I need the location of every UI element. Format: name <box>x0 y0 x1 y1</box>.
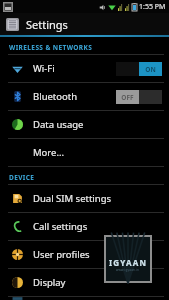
button[interactable]: Bluetooth off <box>116 90 162 104</box>
staticText: WIRELESS & NETWORKS <box>9 43 93 52</box>
button[interactable]: Display <box>0 269 169 296</box>
staticText: Bluetooth <box>33 90 78 103</box>
staticText: Call settings <box>33 220 88 233</box>
button[interactable]: Wi-Fi on <box>116 62 162 76</box>
staticText: www.igyaan.in <box>116 268 140 272</box>
button[interactable]: Dual SIM settings <box>0 185 169 212</box>
staticText: DEVICE <box>9 173 35 182</box>
staticText: Wi-Fi <box>33 62 55 75</box>
staticText: ON <box>145 65 156 74</box>
button[interactable]: Data usage <box>0 111 169 138</box>
staticText: 1:55 PM <box>139 2 166 12</box>
button[interactable]: Storage <box>0 297 169 300</box>
staticText: Data usage <box>33 118 84 131</box>
button[interactable]: Call settings <box>0 213 169 240</box>
button[interactable]: Bluetooth <box>0 83 169 110</box>
staticText: Settings <box>26 17 68 32</box>
staticText: Dual SIM settings <box>33 192 112 205</box>
staticText: Display <box>33 276 66 289</box>
button[interactable]: More... <box>0 139 169 166</box>
staticText: More... <box>33 146 65 159</box>
staticText: IGYAAN <box>109 257 148 268</box>
button[interactable]: Wi-Fi <box>0 55 169 82</box>
staticText: OFF <box>121 93 134 102</box>
staticText: User profiles <box>33 248 90 261</box>
button[interactable]: Settings <box>0 13 169 35</box>
button[interactable]: User profiles <box>0 241 169 268</box>
